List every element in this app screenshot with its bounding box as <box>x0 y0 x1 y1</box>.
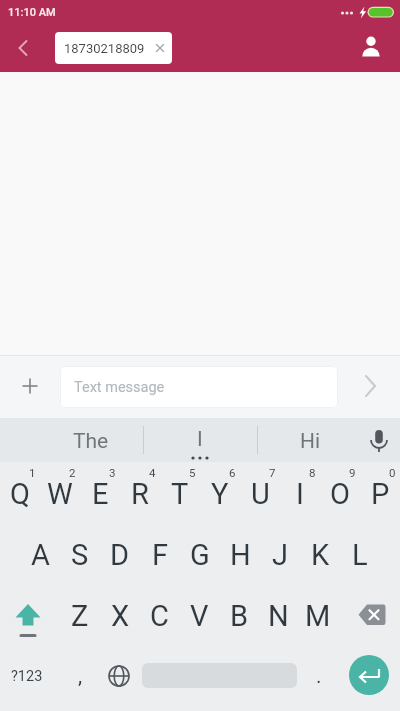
button[interactable]: O <box>310 474 370 514</box>
staticText: E <box>92 477 109 511</box>
staticText: , <box>78 664 83 689</box>
staticText: . <box>316 664 322 689</box>
button[interactable]: H <box>210 535 270 575</box>
staticText: R <box>131 477 149 511</box>
staticText: 2 <box>69 466 76 479</box>
staticText: U <box>251 477 270 511</box>
staticText: T <box>171 477 189 511</box>
button[interactable]: P <box>350 474 400 514</box>
staticText: Hi <box>300 429 321 454</box>
staticText: G <box>190 538 210 572</box>
staticText: H <box>230 538 251 572</box>
staticText: J <box>272 538 289 572</box>
staticText: I <box>296 477 304 511</box>
button[interactable]: L <box>330 535 390 575</box>
staticText: Text message <box>74 379 165 396</box>
button[interactable]: F <box>130 535 190 575</box>
staticText: 0 <box>389 466 396 479</box>
staticText: 7 <box>269 466 276 479</box>
button[interactable]: I <box>270 474 330 514</box>
button[interactable]: E <box>70 474 130 514</box>
button[interactable]: X <box>90 596 150 636</box>
button[interactable]: A <box>10 535 70 575</box>
button[interactable]: S <box>50 535 110 575</box>
button[interactable]: U <box>230 474 290 514</box>
staticText: D <box>110 538 130 572</box>
button[interactable]: W <box>30 474 90 514</box>
staticText: 5 <box>189 466 196 479</box>
button[interactable]: . <box>289 656 349 696</box>
button[interactable]: Hi <box>280 421 340 461</box>
button[interactable] <box>4 594 52 640</box>
staticText: C <box>150 599 169 633</box>
button[interactable]: I <box>170 419 230 459</box>
button[interactable] <box>0 24 44 72</box>
staticText: ?123 <box>11 668 43 685</box>
button[interactable]: , <box>50 656 110 696</box>
button[interactable] <box>97 654 141 698</box>
staticText: 18730218809 <box>64 41 145 56</box>
staticText: The <box>73 429 109 454</box>
button[interactable]: J <box>250 535 310 575</box>
button[interactable]: T <box>150 474 210 514</box>
button[interactable]: 18730218809 <box>55 32 172 64</box>
button[interactable]: C <box>129 596 189 636</box>
staticText: I <box>197 427 203 452</box>
button[interactable]: Z <box>50 596 110 636</box>
staticText: 11:10 AM <box>8 6 56 19</box>
staticText: Z <box>71 599 89 633</box>
button[interactable]: Y <box>190 474 250 514</box>
staticText: 4 <box>149 466 156 479</box>
staticText: L <box>352 538 368 572</box>
staticText: M <box>305 599 331 633</box>
button[interactable]: Text message <box>60 366 338 408</box>
staticText: P <box>371 477 390 511</box>
staticText: 3 <box>109 466 116 479</box>
staticText: 1 <box>29 466 36 479</box>
button[interactable]: B <box>209 596 269 636</box>
button[interactable]: The <box>61 421 121 461</box>
button[interactable]: V <box>169 596 229 636</box>
staticText: S <box>71 538 89 572</box>
button[interactable]: R <box>110 474 170 514</box>
button[interactable]: Q <box>0 474 50 514</box>
staticText: X <box>111 599 130 633</box>
button[interactable] <box>348 597 396 643</box>
staticText: W <box>47 477 73 511</box>
button[interactable]: G <box>170 535 230 575</box>
staticText: B <box>230 599 249 633</box>
button[interactable]: D <box>90 535 150 575</box>
staticText: 9 <box>349 466 356 479</box>
button[interactable] <box>352 24 400 72</box>
button[interactable]: N <box>248 596 308 636</box>
staticText: N <box>268 599 289 633</box>
staticText: Y <box>211 477 229 511</box>
button[interactable]: K <box>290 535 350 575</box>
button[interactable] <box>348 364 392 408</box>
button[interactable]: ?123 <box>0 656 57 696</box>
staticText: K <box>311 538 330 572</box>
button[interactable]: M <box>288 596 348 636</box>
button[interactable] <box>349 655 389 695</box>
staticText: O <box>330 477 350 511</box>
staticText: A <box>31 538 50 572</box>
staticText: F <box>152 538 169 572</box>
staticText: 8 <box>309 466 316 479</box>
staticText: Q <box>10 477 30 511</box>
staticText: 6 <box>229 466 236 479</box>
staticText: V <box>190 599 209 633</box>
button[interactable] <box>8 364 52 408</box>
